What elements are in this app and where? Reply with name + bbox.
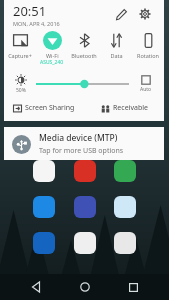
button[interactable]: App [33,196,55,218]
button[interactable]: App [33,160,55,182]
button[interactable]: Data [100,28,132,70]
staticText: Data [110,52,123,59]
button[interactable]: Brightness [10,74,32,94]
button[interactable]: Screen Sharing [4,98,84,118]
staticText: ASUS_240 [40,59,64,66]
button[interactable]: App [74,232,96,254]
button[interactable]: App [114,196,136,218]
button[interactable]: Auto [134,75,158,93]
button[interactable]: App [114,232,136,254]
staticText: Screen Sharing [25,103,75,113]
staticText: Media device (MTP) [39,132,118,144]
button[interactable]: Rotation [132,28,164,70]
button[interactable]: App [74,196,96,218]
button[interactable]: Receivable [84,98,164,118]
staticText: Wi-Fi [46,52,59,59]
button[interactable]: Bluetooth [68,28,100,70]
staticText: Capture+ [8,52,32,59]
button[interactable]: Wi-Fi [36,28,68,70]
staticText: Receivable [113,103,148,113]
staticText: 50% [16,87,26,94]
staticText: Bluetooth [71,52,97,59]
button[interactable]: Capture+ [4,28,36,70]
staticText: Tap for more USB options [39,146,124,156]
staticText: 20:51 [13,2,47,20]
button[interactable]: Media device (MTP) [4,127,164,160]
staticText: Auto [140,86,152,93]
button[interactable]: App [33,232,55,254]
button[interactable]: Settings [135,4,155,24]
button[interactable]: Recents [120,274,146,300]
button[interactable]: Back [23,274,49,300]
staticText: MON, APR 4, 2016 [13,20,60,27]
button[interactable]: Home [72,274,98,300]
button[interactable]: App [74,160,96,182]
button[interactable]: Edit [111,4,131,24]
button[interactable] [36,75,129,93]
button[interactable]: App [114,160,136,182]
staticText: Rotation [137,52,159,59]
